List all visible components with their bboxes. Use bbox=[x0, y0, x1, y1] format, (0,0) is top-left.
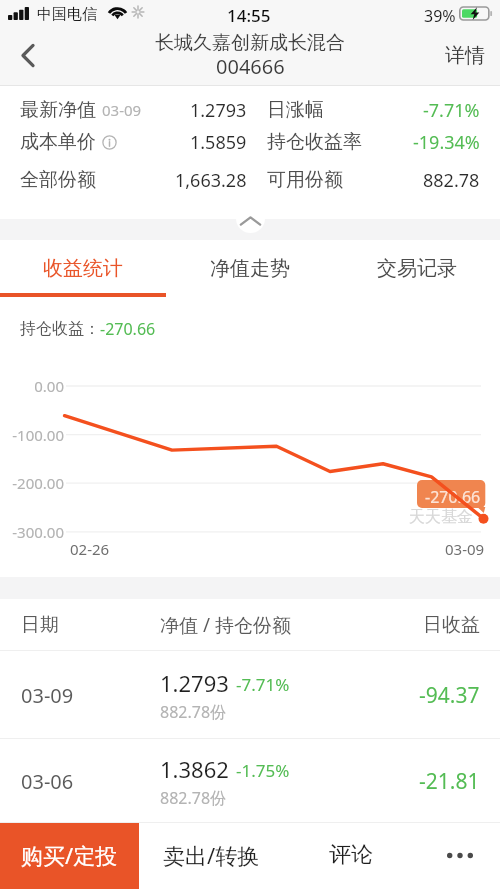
staticText: 03-06 bbox=[21, 768, 74, 795]
staticText: -270.66 bbox=[100, 318, 156, 340]
button[interactable]: 净值走势 bbox=[166, 240, 333, 297]
staticText: 购买/定投 bbox=[21, 840, 118, 870]
button[interactable]: 03-09 bbox=[0, 651, 500, 739]
button[interactable]: 详情 bbox=[431, 30, 500, 86]
staticText: 03-09 bbox=[21, 682, 74, 709]
staticText: 持仓收益率 bbox=[267, 130, 362, 154]
staticText: 1.5859 bbox=[190, 130, 247, 155]
staticText: 卖出/转换 bbox=[163, 840, 260, 870]
button[interactable]: Back bbox=[0, 30, 52, 86]
staticText: 收益统计 bbox=[43, 256, 123, 281]
button[interactable]: 评论 bbox=[284, 823, 417, 889]
staticText: 03-09 bbox=[102, 100, 142, 120]
button[interactable]: 交易记录 bbox=[333, 240, 500, 297]
staticText: 日涨幅 bbox=[267, 98, 324, 122]
staticText: -270.66 bbox=[425, 486, 481, 508]
staticText: -21.81 bbox=[419, 767, 480, 796]
staticText: 004666 bbox=[216, 53, 285, 80]
staticText: 天天基金 bbox=[409, 507, 473, 527]
staticText: 全部份额 bbox=[20, 168, 96, 192]
staticText: 持仓收益： bbox=[20, 319, 100, 339]
staticText: 成本单价 bbox=[20, 130, 96, 154]
button[interactable]: More options bbox=[417, 823, 500, 889]
staticText: 882.78份 bbox=[160, 787, 227, 809]
staticText: 1,663.28 bbox=[175, 168, 247, 193]
staticText: -300.00 bbox=[0, 522, 64, 542]
staticText: 长城久嘉创新成长混合 bbox=[155, 31, 345, 55]
staticText: 882.78份 bbox=[160, 701, 227, 723]
staticText: 交易记录 bbox=[377, 256, 457, 281]
staticText: 882.78 bbox=[423, 168, 480, 193]
staticText: 1.2793 bbox=[190, 98, 247, 123]
staticText: 可用份额 bbox=[267, 168, 343, 192]
button[interactable]: 购买/定投 bbox=[0, 823, 139, 889]
staticText: 0.00 bbox=[0, 376, 64, 396]
staticText: 评论 bbox=[329, 841, 373, 869]
staticText: -7.71% bbox=[236, 673, 290, 696]
staticText: 02-26 bbox=[70, 539, 110, 559]
staticText: -100.00 bbox=[0, 425, 64, 445]
staticText: -94.37 bbox=[419, 681, 480, 710]
staticText: 详情 bbox=[445, 43, 485, 68]
staticText: 净值 / 持仓份额 bbox=[160, 612, 291, 638]
button[interactable]: Collapse header bbox=[236, 204, 265, 233]
staticText: 03-09 bbox=[445, 539, 485, 559]
staticText: 最新净值 bbox=[20, 98, 96, 122]
staticText: -19.34% bbox=[413, 130, 480, 155]
button[interactable]: 03-06 bbox=[0, 739, 500, 823]
staticText: 日期 bbox=[21, 613, 59, 637]
staticText: -200.00 bbox=[0, 473, 64, 493]
staticText: 39% bbox=[424, 5, 456, 27]
staticText: 中国电信 bbox=[37, 5, 97, 24]
staticText: 1.3862 bbox=[160, 754, 229, 784]
staticText: 日收益 bbox=[423, 613, 480, 637]
button[interactable]: 收益统计 bbox=[0, 240, 166, 297]
staticText: 净值走势 bbox=[210, 256, 290, 281]
staticText: -7.71% bbox=[423, 98, 480, 123]
staticText: 1.2793 bbox=[160, 668, 229, 698]
staticText: -1.75% bbox=[236, 759, 290, 782]
staticText: 14:55 bbox=[227, 4, 271, 27]
button[interactable]: 卖出/转换 bbox=[139, 823, 284, 889]
